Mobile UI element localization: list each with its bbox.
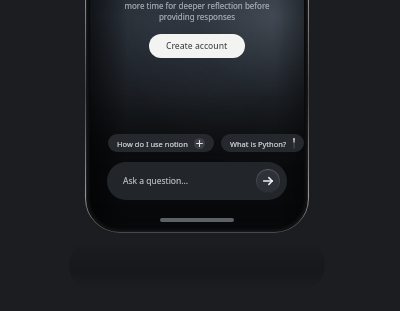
button[interactable]: How do I use notion <box>108 134 214 152</box>
button[interactable]: Send <box>256 169 280 193</box>
staticText: How do I use notion <box>117 139 188 149</box>
staticText: What is Python? <box>230 139 287 149</box>
button[interactable]: Ask a question... <box>107 162 287 200</box>
button[interactable]: What is Python? <box>221 134 304 152</box>
staticText: A new generation of AI models crafted to… <box>110 0 284 22</box>
staticText: Create account <box>166 40 228 52</box>
button[interactable]: Create account <box>149 34 245 58</box>
staticText: Ask a question... <box>123 175 189 187</box>
